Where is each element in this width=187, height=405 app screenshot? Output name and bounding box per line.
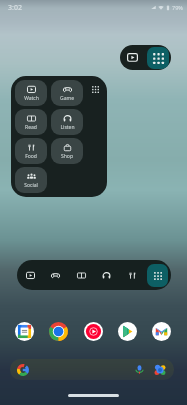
staticText: Read	[25, 124, 37, 131]
button[interactable]: All apps	[147, 264, 168, 287]
button[interactable]: Shop	[51, 138, 83, 164]
button[interactable]: Watch	[20, 264, 41, 287]
button[interactable]: Food	[15, 138, 47, 164]
button[interactable]: Listen	[96, 264, 117, 287]
staticText: 3:02	[8, 3, 22, 13]
button[interactable]: Google Lens	[151, 361, 168, 378]
button[interactable]: Play Store	[118, 322, 137, 341]
staticText: Food	[25, 153, 37, 160]
button[interactable]: Chrome	[49, 322, 68, 341]
button[interactable]: Calendar	[15, 322, 34, 341]
button[interactable]: Game	[51, 80, 83, 106]
button[interactable]: Voice search	[10, 359, 174, 380]
button[interactable]: Gmail	[152, 322, 171, 341]
button[interactable]: Voice search	[131, 361, 148, 378]
button[interactable]: Watch	[15, 80, 47, 106]
button[interactable]: All apps	[83, 77, 107, 101]
button[interactable]: YouTube Music	[84, 322, 103, 341]
staticText: Watch	[24, 95, 39, 102]
button[interactable]: Read	[15, 109, 47, 135]
button[interactable]: Listen	[51, 109, 83, 135]
button[interactable]: Social	[15, 167, 47, 193]
staticText: Shop	[61, 153, 73, 160]
staticText: Listen	[60, 124, 75, 131]
staticText: Social	[24, 182, 38, 189]
button[interactable]: Food	[122, 264, 143, 287]
button[interactable]: All apps	[147, 47, 169, 69]
staticText: 79%	[172, 4, 183, 11]
button[interactable]: Watch	[122, 47, 143, 68]
button[interactable]: Read	[71, 264, 92, 287]
staticText: Game	[60, 95, 74, 102]
button[interactable]: Game	[45, 264, 66, 287]
